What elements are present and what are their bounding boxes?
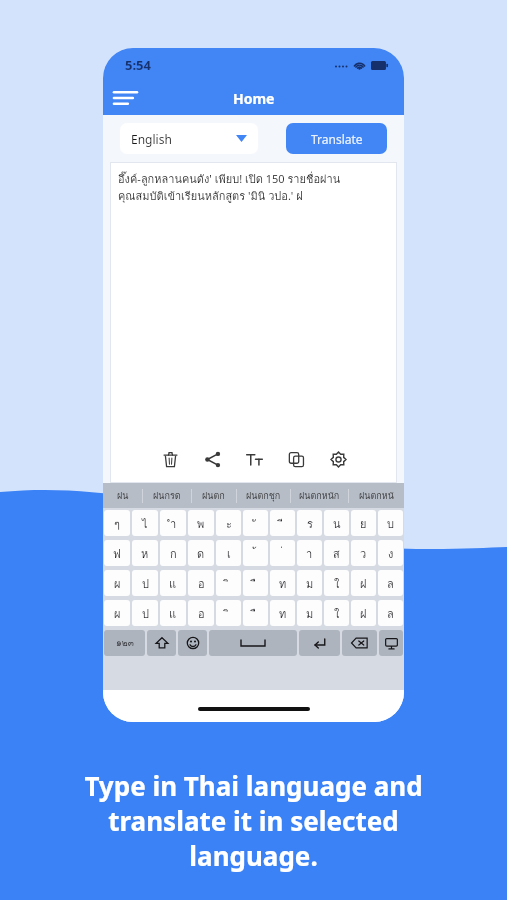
button[interactable]: ท — [270, 600, 295, 626]
button[interactable]: Settings — [325, 446, 351, 472]
button[interactable]: น — [324, 510, 349, 536]
button[interactable]: ผ — [104, 600, 130, 626]
staticText: ไ — [142, 515, 148, 532]
button[interactable]: Shift — [147, 630, 176, 656]
button[interactable]: ห — [132, 540, 158, 566]
button[interactable]: บ — [378, 510, 403, 536]
button[interactable]: ผ — [104, 570, 130, 596]
staticText: บ — [387, 515, 394, 532]
staticText: ว — [360, 545, 367, 562]
button[interactable]: ส — [324, 540, 349, 566]
button[interactable]: ื — [243, 570, 268, 596]
button[interactable]: ท — [270, 570, 295, 596]
button[interactable]: เ — [216, 540, 241, 566]
button[interactable]: ไ — [132, 510, 158, 536]
button[interactable]: พ — [188, 510, 214, 536]
button[interactable]: ะ — [216, 510, 241, 536]
staticText: ร — [307, 515, 313, 532]
staticText: ท — [279, 605, 287, 622]
button[interactable]: Delete — [157, 446, 183, 472]
button[interactable]: ป — [132, 600, 158, 626]
staticText: translate it in selected — [28, 803, 479, 838]
staticText: า — [306, 545, 313, 562]
button[interactable]: ก — [160, 540, 186, 566]
button[interactable]: ด — [188, 540, 214, 566]
staticText: ผ — [114, 605, 121, 622]
button[interactable]: Backspace — [342, 630, 377, 656]
button[interactable]: Numbers — [104, 630, 145, 656]
button[interactable]: อ — [188, 570, 214, 596]
staticText: แ — [169, 605, 177, 622]
staticText: ป — [142, 575, 149, 592]
button[interactable]: ย — [351, 510, 376, 536]
button[interactable]: ร — [297, 510, 322, 536]
button[interactable]: ม — [297, 600, 322, 626]
staticText: Translate — [311, 131, 363, 147]
staticText: Home — [233, 89, 275, 108]
button[interactable]: Enter — [299, 630, 340, 656]
button[interactable]: ฝนกรด — [142, 483, 191, 508]
staticText: 5:54 — [125, 56, 151, 74]
staticText: ฝนตกหนั — [359, 489, 394, 503]
staticText: ใ — [334, 575, 340, 592]
button[interactable]: ำ — [160, 510, 186, 536]
staticText: ย — [360, 515, 367, 532]
staticText: ผ — [114, 575, 121, 592]
button[interactable]: ี — [270, 510, 295, 536]
button[interactable]: Copy — [283, 446, 309, 472]
button[interactable]: ป — [132, 570, 158, 596]
button[interactable]: ฝนตกชุก — [236, 483, 290, 508]
button[interactable]: ฝนตกหนั — [348, 483, 404, 508]
button[interactable]: ฝนตกหนัก — [290, 483, 348, 508]
button[interactable]: English — [120, 123, 258, 154]
button[interactable]: ใ — [324, 600, 349, 626]
button[interactable]: ล — [378, 570, 403, 596]
staticText: ล — [387, 605, 394, 622]
button[interactable]: Share — [199, 446, 225, 472]
button[interactable]: Space — [209, 630, 297, 656]
button[interactable]: Keyboard options — [379, 630, 403, 656]
staticText: ฝ — [360, 575, 367, 592]
staticText: ท — [279, 575, 287, 592]
staticText: น — [333, 515, 341, 532]
button[interactable]: ื — [243, 600, 268, 626]
button[interactable]: Open menu — [110, 83, 140, 113]
button[interactable]: ฝน — [103, 483, 142, 508]
button[interactable]: Emoji — [178, 630, 207, 656]
button[interactable]: ง — [378, 540, 403, 566]
staticText: ก — [170, 545, 177, 562]
button[interactable]: ฝ — [351, 600, 376, 626]
button[interactable]: ๆ — [104, 510, 130, 536]
button[interactable]: ฝนตก — [191, 483, 236, 508]
button[interactable]: ิ — [216, 570, 241, 596]
staticText: อ — [198, 605, 205, 622]
button[interactable]: ฟ — [104, 540, 130, 566]
button[interactable]: ม — [297, 570, 322, 596]
button[interactable]: แ — [160, 570, 186, 596]
button[interactable]: ฝ — [351, 570, 376, 596]
button[interactable]: Text size — [241, 446, 267, 472]
button[interactable]: ว — [351, 540, 376, 566]
button[interactable]: อ — [188, 600, 214, 626]
staticText: ฟ — [113, 545, 121, 562]
button[interactable]: ้ — [243, 540, 268, 566]
button[interactable]: ล — [378, 600, 403, 626]
staticText: ๆ — [114, 515, 120, 532]
button[interactable]: ิ — [216, 600, 241, 626]
button[interactable]: แ — [160, 600, 186, 626]
staticText: ห — [141, 545, 149, 562]
staticText: ใ — [334, 605, 340, 622]
button[interactable]: ั — [243, 510, 268, 536]
staticText: ฝ — [360, 605, 367, 622]
staticText: แ — [169, 575, 177, 592]
staticText: ๑๒๓ — [116, 636, 134, 650]
staticText: ฝนตกชุก — [246, 489, 281, 503]
button[interactable]: ่ — [270, 540, 295, 566]
button[interactable]: Translate — [286, 123, 387, 154]
staticText: English — [131, 131, 172, 147]
staticText: เ — [227, 545, 231, 562]
button[interactable]: า — [297, 540, 322, 566]
staticText: อึ๊งค์-ลูกหลานคนดัง' เพียบ! เปิด 150 ราย… — [118, 170, 341, 204]
staticText: language. — [28, 838, 479, 873]
button[interactable]: ใ — [324, 570, 349, 596]
